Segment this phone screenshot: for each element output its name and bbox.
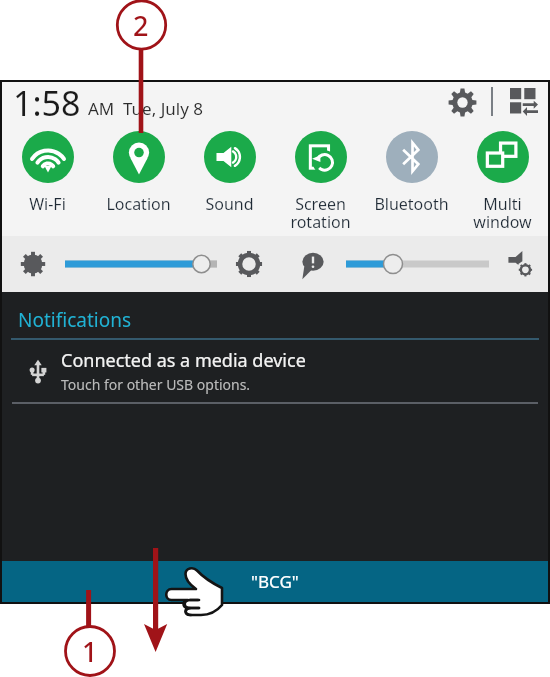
button[interactable]: Wi-Fi [2, 129, 93, 215]
staticText: Touch for other USB options. [61, 375, 251, 394]
button[interactable]: Sound settings [504, 247, 538, 281]
staticText: "BCG" [251, 570, 299, 593]
staticText: Multi window [473, 193, 532, 233]
button[interactable]: Settings [442, 82, 482, 122]
staticText: Notifications [18, 307, 132, 333]
staticText: Connected as a media device [61, 348, 306, 373]
button[interactable]: Bluetooth [366, 129, 457, 215]
staticText: Location [106, 193, 171, 215]
button[interactable]: Brightness [19, 250, 47, 278]
staticText: AM [88, 97, 115, 120]
button[interactable]: "BCG" [2, 561, 548, 602]
staticText: Bluetooth [374, 193, 449, 215]
staticText: Wi-Fi [29, 193, 66, 215]
staticText: 1:58 [13, 80, 81, 126]
staticText: 1 [82, 633, 98, 670]
staticText: Sound [205, 193, 254, 215]
button[interactable]: Edit quick settings [504, 82, 544, 122]
button[interactable]: Sound [184, 129, 275, 215]
button[interactable]: Screen rotation [275, 129, 366, 233]
button[interactable]: Multi window [457, 129, 548, 233]
button[interactable]: Notifications volume [299, 250, 327, 278]
button[interactable]: Location [93, 129, 184, 215]
button[interactable]: Auto brightness [234, 249, 264, 279]
staticText: Tue, July 8 [123, 97, 204, 120]
staticText: 2 [133, 7, 149, 44]
button[interactable]: Connected as a media device [2, 340, 548, 401]
staticText: Screen rotation [290, 193, 351, 233]
